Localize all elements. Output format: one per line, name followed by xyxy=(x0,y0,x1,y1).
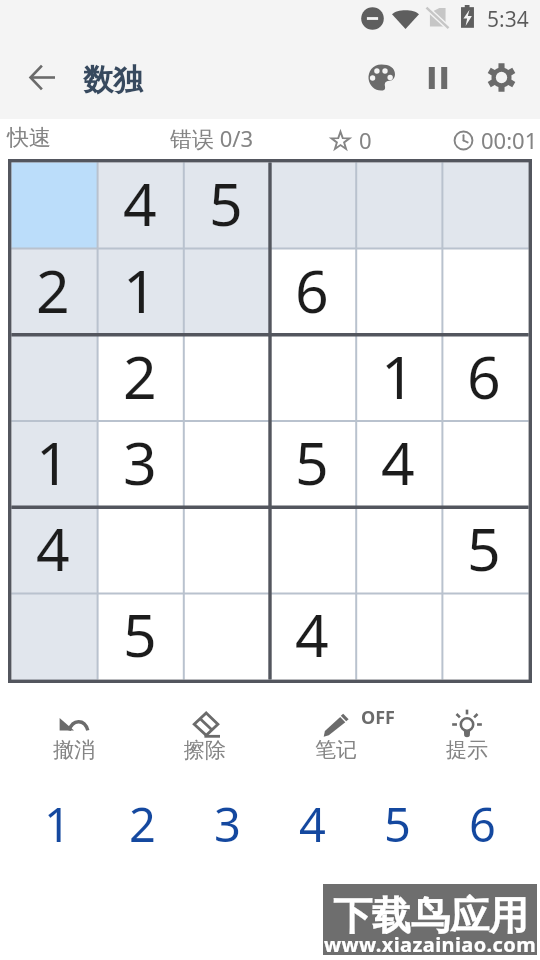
button[interactable] xyxy=(185,594,271,680)
button[interactable]: Back xyxy=(14,49,70,105)
staticText: OFF xyxy=(361,705,396,730)
button[interactable] xyxy=(11,594,98,680)
button[interactable] xyxy=(443,249,529,336)
staticText: 3 xyxy=(214,792,241,852)
staticText: 1 xyxy=(381,336,415,416)
staticText: 2 xyxy=(36,250,70,330)
staticText: 撤消 xyxy=(53,737,95,763)
button[interactable] xyxy=(185,249,271,336)
button[interactable]: 2 xyxy=(11,249,98,336)
staticText: 6 xyxy=(295,250,329,330)
button[interactable] xyxy=(11,162,98,249)
staticText: 5 xyxy=(209,163,243,243)
staticText: 1 xyxy=(123,250,157,330)
staticText: 5 xyxy=(123,594,157,674)
staticText: 2 xyxy=(129,792,156,852)
staticText: 4 xyxy=(299,792,326,852)
button[interactable]: 4 xyxy=(270,792,355,852)
button[interactable]: 4 xyxy=(98,162,185,249)
button[interactable]: Pause xyxy=(412,51,464,103)
button[interactable]: 3 xyxy=(185,792,270,852)
staticText: 笔记 xyxy=(315,737,357,763)
button[interactable]: Theme xyxy=(355,51,407,103)
button[interactable] xyxy=(185,422,271,508)
staticText: 4 xyxy=(36,508,70,588)
button[interactable]: 1 xyxy=(357,336,443,422)
button[interactable]: 4 xyxy=(357,422,443,508)
button[interactable]: 2 xyxy=(100,792,185,852)
button[interactable] xyxy=(443,162,529,249)
staticText: 错误 0/3 xyxy=(170,123,254,153)
button[interactable] xyxy=(271,508,357,594)
staticText: 提示 xyxy=(446,737,488,763)
button[interactable]: 1 xyxy=(11,422,98,508)
button[interactable]: 5 xyxy=(271,422,357,508)
staticText: 快速 xyxy=(7,124,51,152)
staticText: 5 xyxy=(384,792,411,852)
button[interactable]: Settings xyxy=(475,51,527,103)
button[interactable] xyxy=(11,336,98,422)
button[interactable] xyxy=(357,594,443,680)
staticText: 擦除 xyxy=(184,737,226,763)
staticText: 5 xyxy=(295,422,329,502)
staticText: 4 xyxy=(123,163,157,243)
staticText: 下载鸟应用 xyxy=(333,891,528,940)
staticText: www.xiazainiao.com xyxy=(324,931,537,958)
button[interactable]: 提示 xyxy=(401,685,532,771)
button[interactable]: 4 xyxy=(271,594,357,680)
button[interactable]: 6 xyxy=(443,336,529,422)
button[interactable] xyxy=(185,508,271,594)
button[interactable]: 1 xyxy=(15,792,100,852)
button[interactable] xyxy=(98,508,185,594)
button[interactable] xyxy=(271,336,357,422)
staticText: 6 xyxy=(467,336,501,416)
button[interactable]: 5 xyxy=(443,508,529,594)
staticText: 1 xyxy=(44,792,71,852)
button[interactable] xyxy=(443,422,529,508)
button[interactable]: 6 xyxy=(271,249,357,336)
button[interactable]: 4 xyxy=(11,508,98,594)
button[interactable]: 1 xyxy=(98,249,185,336)
staticText: 4 xyxy=(295,594,329,674)
staticText: 5 xyxy=(467,508,501,588)
staticText: 2 xyxy=(123,336,157,416)
button[interactable]: 2 xyxy=(98,336,185,422)
staticText: 00:01 xyxy=(481,125,538,155)
button[interactable] xyxy=(357,162,443,249)
button[interactable] xyxy=(443,594,529,680)
button[interactable] xyxy=(185,336,271,422)
button[interactable] xyxy=(357,249,443,336)
staticText: 6 xyxy=(469,792,496,852)
button[interactable]: 3 xyxy=(98,422,185,508)
staticText: 5:34 xyxy=(487,5,529,34)
button[interactable]: OFF xyxy=(270,685,401,771)
staticText: 4 xyxy=(381,422,415,502)
button[interactable]: 撤消 xyxy=(8,685,139,771)
button[interactable]: 擦除 xyxy=(139,685,270,771)
button[interactable]: 5 xyxy=(98,594,185,680)
staticText: 1 xyxy=(36,422,70,502)
staticText: 数独 xyxy=(83,61,143,99)
button[interactable] xyxy=(271,162,357,249)
button[interactable]: 5 xyxy=(185,162,271,249)
staticText: 0 xyxy=(359,125,372,155)
button[interactable] xyxy=(357,508,443,594)
button[interactable]: 6 xyxy=(440,792,525,852)
button[interactable]: 5 xyxy=(355,792,440,852)
staticText: 3 xyxy=(123,422,157,502)
